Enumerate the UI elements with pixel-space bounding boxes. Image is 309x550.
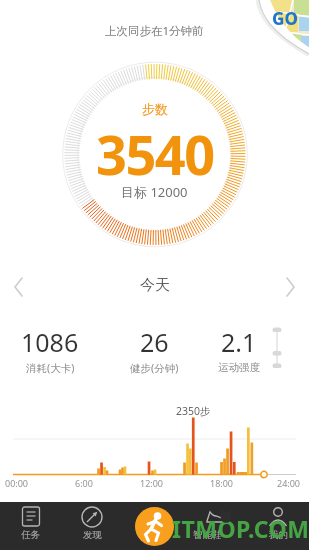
- button[interactable]: 我的: [247, 502, 309, 550]
- staticText: 上次同步在1分钟前: [105, 23, 204, 39]
- staticText: 3540: [96, 117, 214, 191]
- staticText: GO: [272, 7, 298, 30]
- button[interactable]: 任务: [0, 502, 61, 550]
- staticText: 6:00: [75, 477, 93, 489]
- button[interactable]: [257, 0, 309, 52]
- staticText: 2350步: [176, 404, 211, 418]
- staticText: 26: [140, 325, 169, 359]
- staticText: 消耗(大卡): [26, 361, 75, 375]
- staticText: 2.1: [221, 325, 257, 359]
- button[interactable]: [123, 502, 185, 550]
- staticText: 智能鞋: [193, 529, 222, 541]
- button[interactable]: 智能鞋: [185, 502, 247, 550]
- staticText: 我的: [269, 529, 288, 541]
- staticText: 目标 12000: [121, 183, 188, 201]
- staticText: 任务: [21, 529, 40, 541]
- staticText: 24:00: [277, 477, 301, 489]
- staticText: 18:00: [210, 477, 234, 489]
- staticText: 运动强度: [218, 361, 260, 374]
- staticText: 00:00: [5, 477, 29, 489]
- staticText: 健步(分钟): [130, 361, 179, 375]
- staticText: ITMOP.COM: [172, 513, 309, 544]
- button[interactable]: 发现: [61, 502, 123, 550]
- staticText: 步数: [142, 101, 168, 117]
- staticText: 今天: [140, 276, 170, 295]
- staticText: 12:00: [140, 477, 164, 489]
- staticText: 1086: [21, 325, 79, 359]
- staticText: 发现: [83, 529, 102, 541]
